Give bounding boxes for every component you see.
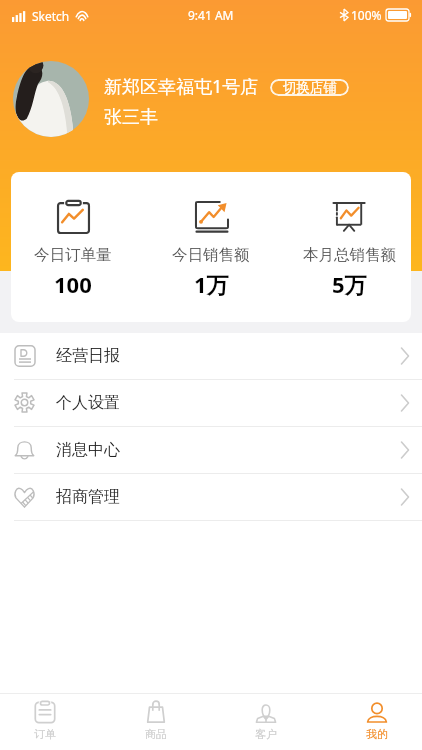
staticText: 商品 (145, 727, 167, 741)
button[interactable]: 切换店铺 (270, 79, 349, 96)
button[interactable]: 经营日报 (0, 333, 422, 380)
button[interactable]: 我的 (322, 694, 422, 750)
staticText: 今日订单量 (34, 245, 112, 265)
staticText: 消息中心 (56, 440, 120, 460)
staticText: 经营日报 (56, 346, 120, 366)
staticText: 切换店铺 (283, 79, 337, 96)
button[interactable]: 订单 (0, 694, 100, 750)
button[interactable]: 商品 (101, 694, 211, 750)
button[interactable]: 今日销售额 (142, 172, 280, 299)
button[interactable]: 消息中心 (0, 427, 422, 474)
button[interactable]: 本月总销售额 (280, 172, 418, 299)
staticText: 个人设置 (56, 393, 120, 413)
staticText: 今日销售额 (172, 245, 250, 265)
staticText: 本月总销售额 (303, 245, 396, 265)
button[interactable]: 客户 (211, 694, 321, 750)
staticText: 新郑区幸福屯1号店 (104, 74, 259, 99)
button[interactable]: 今日订单量 (4, 172, 142, 299)
staticText: 张三丰 (104, 106, 158, 129)
staticText: 100 (54, 269, 92, 299)
staticText: 1万 (194, 269, 229, 299)
staticText: 5万 (332, 269, 367, 299)
staticText: 客户 (255, 727, 277, 741)
staticText: 100% (351, 7, 382, 23)
staticText: 我的 (366, 727, 388, 741)
staticText: 订单 (34, 727, 56, 741)
staticText: 招商管理 (56, 487, 120, 507)
staticText: 9:41 AM (188, 7, 234, 23)
staticText: Sketch (32, 8, 70, 24)
button[interactable]: 招商管理 (0, 474, 422, 521)
button[interactable]: 个人设置 (0, 380, 422, 427)
